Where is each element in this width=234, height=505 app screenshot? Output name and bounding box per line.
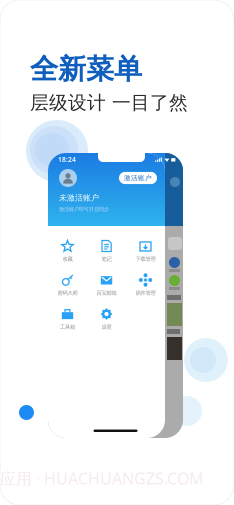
button[interactable]: 收藏 bbox=[48, 239, 87, 263]
button[interactable]: 下载管理 bbox=[126, 239, 165, 263]
staticText: 激活账户即可开启同步 bbox=[59, 206, 109, 212]
button[interactable]: 工具箱 bbox=[48, 307, 87, 331]
button[interactable]: 插件管理 bbox=[126, 273, 165, 297]
button[interactable]: 设置 bbox=[87, 307, 126, 331]
button[interactable]: 笔记 bbox=[87, 239, 126, 263]
staticText: 密码大师 bbox=[57, 290, 77, 296]
button[interactable]: 密码大师 bbox=[48, 273, 87, 297]
button[interactable]: 百宝邮箱 bbox=[87, 273, 126, 297]
staticText: 未激活账户 bbox=[59, 193, 99, 203]
staticText: 激活账户 bbox=[124, 174, 152, 182]
staticText: 百宝邮箱 bbox=[96, 290, 116, 296]
staticText: 下载管理 bbox=[135, 256, 155, 262]
staticText: 插件管理 bbox=[135, 290, 155, 296]
button[interactable]: 激活账户 bbox=[119, 172, 157, 184]
staticText: 全新菜单 bbox=[30, 52, 142, 86]
staticText: 层级设计 一目了然 bbox=[30, 91, 188, 114]
staticText: 设置 bbox=[101, 324, 111, 330]
staticText: 收藏 bbox=[62, 256, 72, 262]
staticText: 笔记 bbox=[101, 256, 111, 262]
staticText: 18:24 bbox=[58, 155, 76, 164]
staticText: 应用 · HUACHUANGZS.COM bbox=[0, 468, 204, 489]
staticText: 工具箱 bbox=[60, 324, 75, 330]
